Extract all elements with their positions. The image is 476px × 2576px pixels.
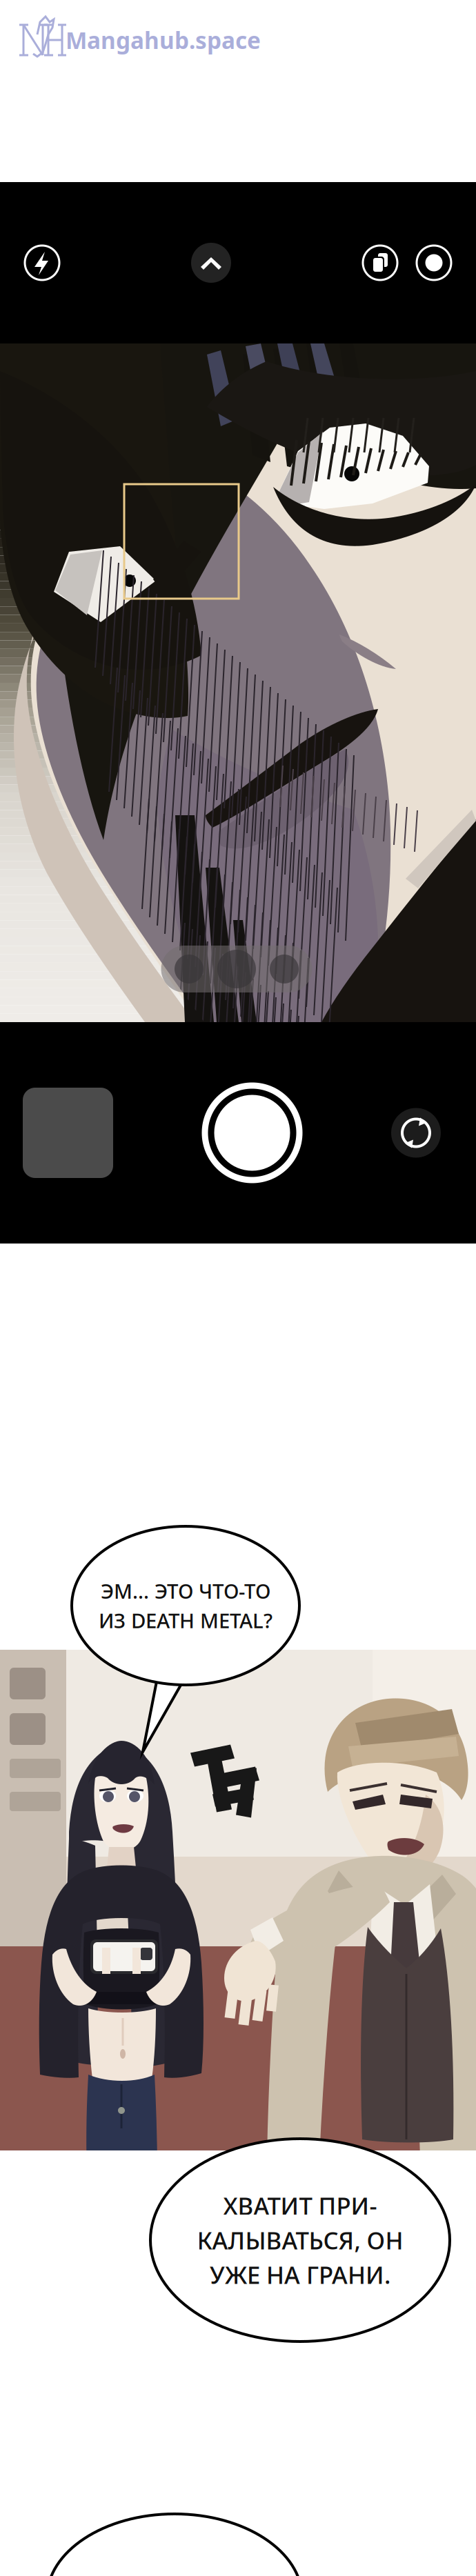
staticText: ИЗ DEATH METAL?: [99, 1607, 272, 1634]
button[interactable]: Flip camera: [391, 1108, 441, 1158]
staticText: УЖЕ НА ГРАНИ.: [210, 2259, 390, 2290]
button[interactable]: Photo library: [23, 1088, 113, 1178]
staticText: ЭМ... ЭТО ЧТО-ТО: [101, 1577, 270, 1604]
staticText: Mangahub.space: [66, 25, 261, 55]
button[interactable]: Filters: [417, 246, 451, 280]
button[interactable]: Live Photo: [363, 246, 397, 280]
staticText: КАЛЫВАТЬСЯ, ОН: [197, 2224, 403, 2256]
staticText: ХВАТИТ ПРИ-: [223, 2190, 377, 2221]
button[interactable]: Shutter: [205, 1086, 299, 1180]
button[interactable]: More options: [191, 243, 231, 283]
button[interactable]: Flash: [25, 246, 59, 280]
